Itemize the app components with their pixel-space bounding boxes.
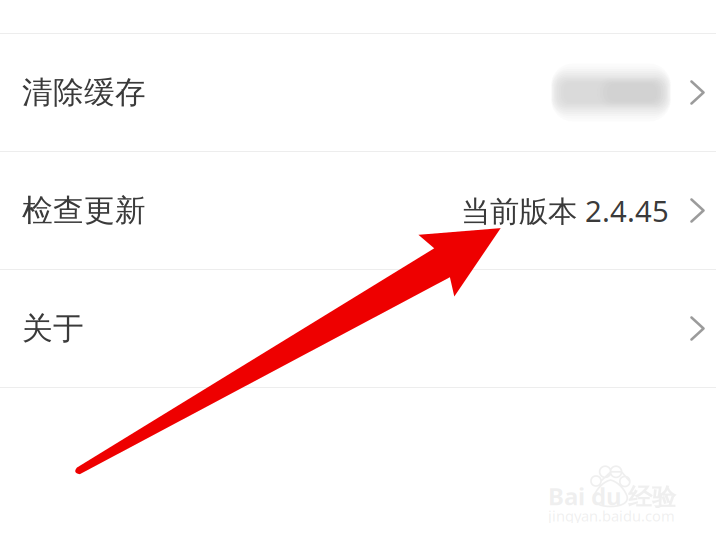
button[interactable]: 清除缓存: [0, 34, 716, 151]
staticText: 检查更新: [22, 192, 146, 229]
staticText: 当前版本 2.4.45: [461, 191, 669, 230]
staticText: 清除缓存: [22, 74, 146, 111]
button[interactable]: 关于: [0, 270, 716, 387]
staticText: jingyan.baidu.com: [548, 506, 675, 525]
staticText: 关于: [22, 310, 84, 347]
button[interactable]: 检查更新: [0, 152, 716, 269]
staticText: Bai du 经验: [548, 480, 676, 512]
